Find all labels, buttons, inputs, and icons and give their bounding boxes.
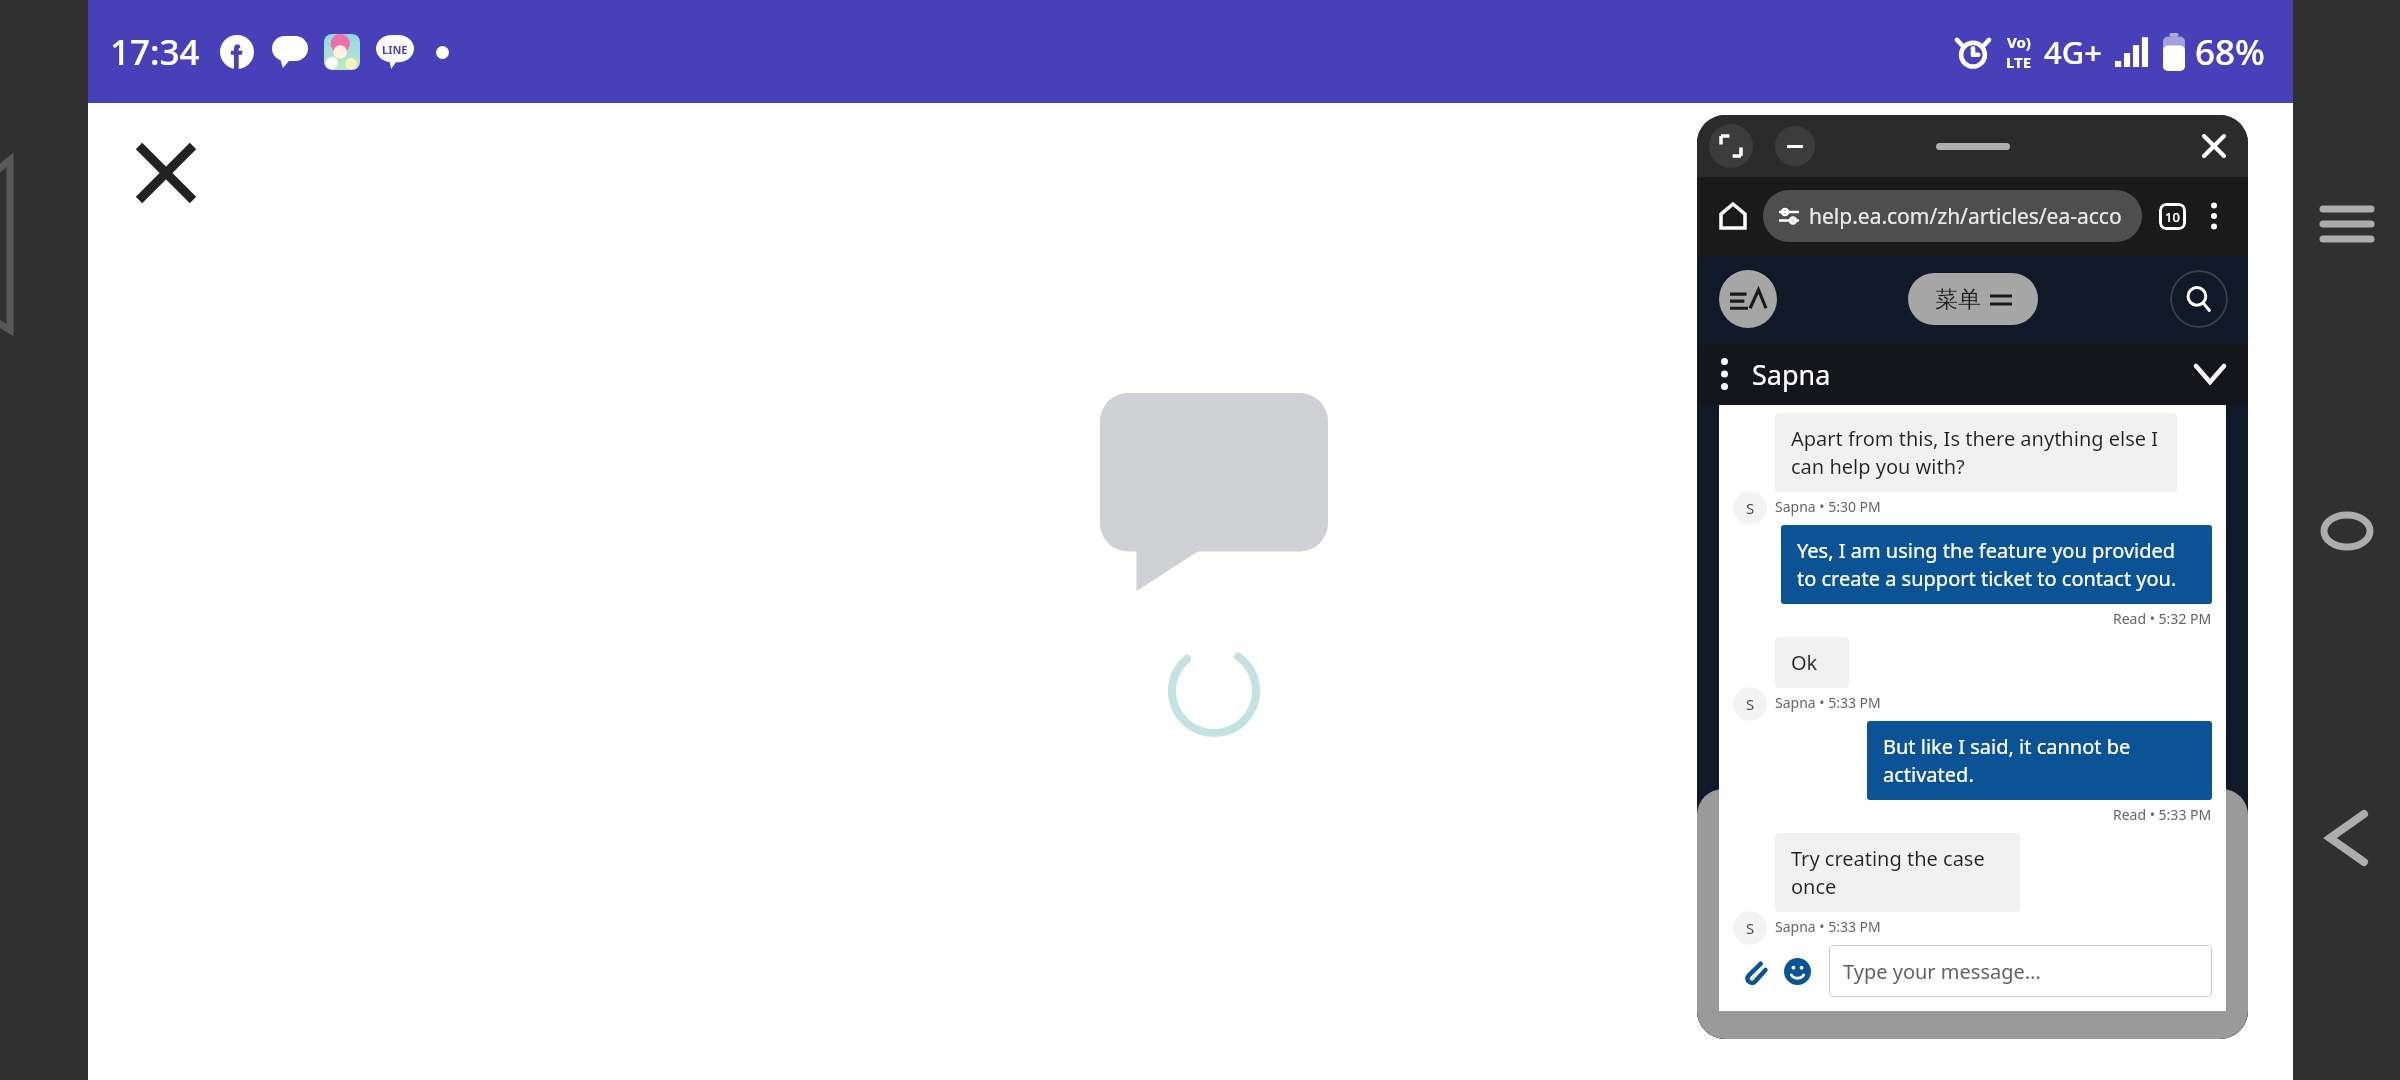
button[interactable]: Attach file [1733,951,1773,991]
button[interactable]: Close [110,117,222,229]
button[interactable]: Tabs [2150,194,2194,238]
button[interactable]: Minimise window [1775,126,1815,166]
button[interactable]: Ok [1775,637,1849,688]
button[interactable]: Search [2170,270,2228,328]
button[interactable]: Expand window [1709,124,1753,168]
staticText: 10 [2165,208,2180,226]
staticText: Read • 5:32 PM [2113,609,2212,628]
staticText: Sapna • 5:33 PM [1775,917,1881,936]
button[interactable]: 菜单 [1908,273,2038,325]
staticText: Sapna • 5:30 PM [1775,497,1881,516]
button[interactable]: Type your message... [1829,945,2212,997]
staticText: 菜单 [1935,285,1981,314]
button[interactable]: help.ea.com/zh/articles/ea-acco [1763,190,2142,242]
staticText: Read • 5:33 PM [2113,805,2212,824]
staticText: S [1746,694,1755,714]
staticText: Ok [1791,649,1818,676]
button[interactable]: Back [2293,784,2400,891]
button[interactable]: Recents [2293,170,2400,277]
staticText: Sapna [1752,356,1831,393]
button[interactable]: Insert emoji [1777,951,1817,991]
button[interactable]: More options [2194,196,2234,236]
button[interactable]: Apart from this, Is there anything else … [1775,413,2177,492]
button[interactable]: Try creating the case once [1775,833,2020,912]
staticText: Try creating the case once [1791,845,2004,900]
button[interactable]: EA home [1719,270,1777,328]
staticText: Sapna • 5:33 PM [1775,693,1881,712]
staticText: 68% [2195,28,2265,76]
staticText: 4G+ [2044,31,2103,73]
staticText: LTE [2006,52,2032,72]
staticText: LINE [382,42,408,57]
staticText: Yes, I am using the feature you provided… [1797,537,2196,592]
staticText: S [1746,498,1755,518]
button[interactable]: Yes, I am using the feature you provided… [1781,525,2212,604]
staticText: Type your message... [1843,958,2041,985]
staticText: But like I said, it cannot be activated. [1883,733,2196,788]
staticText: S [1746,918,1755,938]
button[interactable]: Home page [1711,194,1755,238]
button[interactable]: Close window [2194,126,2234,166]
staticText: help.ea.com/zh/articles/ea-acco [1809,202,2122,231]
staticText: Vo) [2007,32,2031,52]
staticText: Apart from this, Is there anything else … [1791,425,2161,480]
button[interactable]: Home [2293,477,2400,584]
staticText: 17:34 [110,28,200,76]
button[interactable]: Sapna [1697,343,2248,405]
button[interactable]: But like I said, it cannot be activated. [1867,721,2212,800]
